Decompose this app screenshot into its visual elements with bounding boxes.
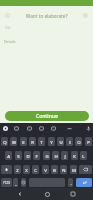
staticText: B (53, 167, 56, 173)
button[interactable]: tool2 (24, 123, 34, 133)
staticText: Details (4, 39, 16, 44)
staticText: G (45, 153, 49, 159)
button[interactable]: , (13, 178, 18, 187)
staticText: E (22, 139, 25, 145)
button[interactable]: tool6 (83, 123, 93, 133)
button[interactable]: U (57, 137, 64, 146)
staticText: D (26, 153, 30, 159)
staticText: J (64, 153, 66, 159)
button[interactable]: K (71, 151, 78, 160)
staticText: ?123 (3, 181, 10, 185)
button[interactable]: Z (14, 165, 21, 174)
button[interactable]: tool5 (64, 123, 74, 133)
button[interactable]: A (5, 151, 12, 160)
staticText: S (17, 153, 20, 159)
button[interactable]: H (52, 151, 59, 160)
button[interactable]: Back (0, 8, 14, 22)
button[interactable]: D (24, 151, 31, 160)
staticText: , (15, 180, 17, 186)
button[interactable]: Enter (76, 178, 92, 187)
button[interactable]: Y (48, 137, 55, 146)
staticText: I (69, 139, 71, 145)
button[interactable]: Home (41, 188, 53, 200)
button[interactable]: B (51, 165, 58, 174)
staticText: V (44, 167, 47, 173)
button[interactable]: N (60, 165, 67, 174)
button[interactable]: tool1 (11, 123, 21, 133)
staticText: Z (16, 167, 19, 173)
button[interactable]: Recents (67, 188, 79, 200)
button[interactable]: . (68, 178, 73, 187)
staticText: W (12, 139, 16, 145)
staticText: M (72, 167, 76, 173)
button[interactable]: X (23, 165, 30, 174)
button[interactable]: Back (14, 188, 26, 200)
button[interactable]: G (43, 151, 50, 160)
staticText: O (77, 139, 81, 145)
staticText: H (54, 153, 58, 159)
staticText: F (35, 153, 38, 159)
button[interactable]: Help (78, 8, 92, 22)
button[interactable]: E (20, 137, 27, 146)
button[interactable]: W (10, 137, 17, 146)
button[interactable]: L (80, 151, 87, 160)
button[interactable]: S (15, 151, 22, 160)
button[interactable]: V (42, 165, 49, 174)
button[interactable]: tool3 (36, 123, 46, 133)
button[interactable]: O (75, 137, 82, 146)
staticText: N (62, 167, 66, 173)
button[interactable]: T (38, 137, 45, 146)
button[interactable]: P (85, 137, 92, 146)
staticText: R (31, 139, 34, 145)
staticText: C (34, 167, 37, 173)
staticText: L (82, 153, 85, 159)
button[interactable]: R (29, 137, 36, 146)
staticText: Want to elaborate? (26, 13, 68, 19)
staticText: Title (5, 26, 11, 30)
button[interactable]: C (32, 165, 39, 174)
staticText: A (7, 153, 10, 159)
button[interactable]: Continue (5, 111, 89, 121)
staticText: Y (50, 139, 53, 145)
button[interactable]: Backspace (79, 165, 92, 174)
button[interactable]: Details (0, 37, 93, 49)
staticText: Q (3, 139, 7, 145)
button[interactable]: J (61, 151, 68, 160)
button[interactable]: Q (1, 137, 8, 146)
staticText: P (87, 139, 90, 145)
button[interactable]: I (66, 137, 73, 146)
button[interactable]: Shift (1, 165, 12, 174)
staticText: T (40, 139, 43, 145)
staticText: K (73, 153, 76, 159)
button[interactable]: Emoji (21, 178, 26, 187)
staticText: U (59, 139, 63, 145)
staticText: Continue (36, 113, 58, 120)
button[interactable]: tool0 (0, 123, 10, 133)
button[interactable]: ?123 (1, 178, 12, 187)
button[interactable]: F (33, 151, 40, 160)
button[interactable]: tool4 (48, 123, 58, 133)
staticText: X (25, 167, 28, 173)
button[interactable]: M (70, 165, 77, 174)
staticText: . (70, 180, 72, 186)
